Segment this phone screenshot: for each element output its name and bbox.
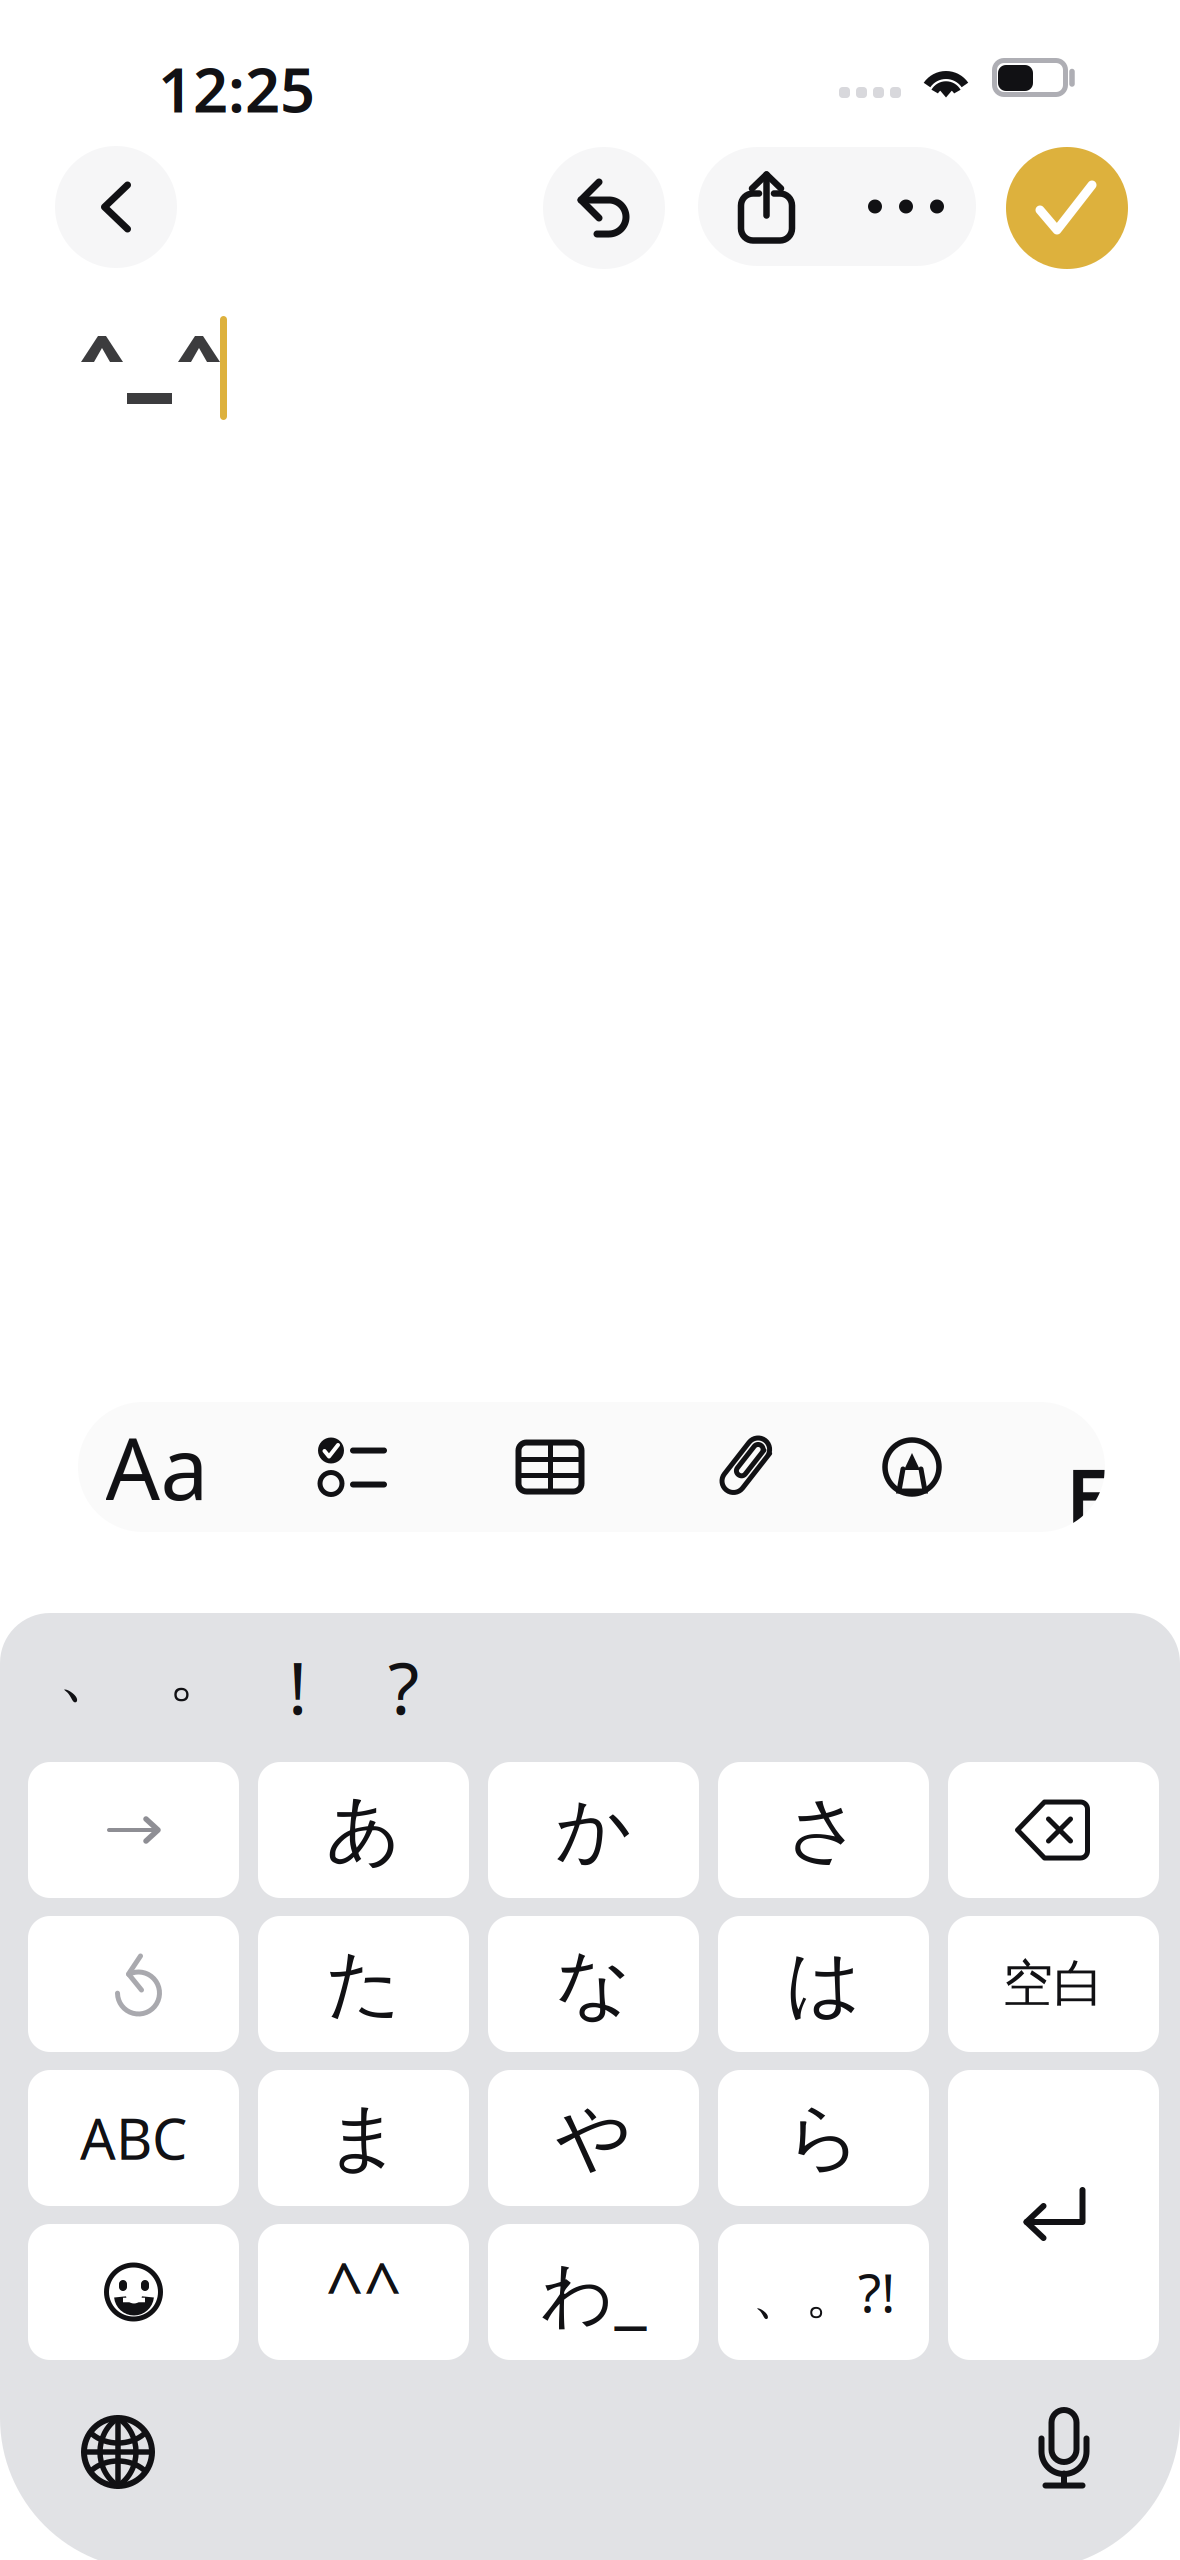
button[interactable]: わ_	[488, 2224, 699, 2360]
button[interactable]: Share	[698, 147, 836, 266]
button[interactable]: ら	[718, 2070, 929, 2206]
button[interactable]: Checklist	[281, 1402, 421, 1532]
staticText: 、。?!	[752, 2256, 895, 2328]
button[interactable]: さ	[718, 1762, 929, 1898]
staticText: 、	[58, 1634, 122, 1713]
staticText: !	[288, 1639, 307, 1735]
button[interactable]: Markup	[842, 1402, 982, 1532]
button[interactable]: や	[488, 2070, 699, 2206]
button[interactable]: か	[488, 1762, 699, 1898]
staticText: ら	[785, 2092, 861, 2184]
button[interactable]: あ	[258, 1762, 469, 1898]
staticText: か	[555, 1784, 631, 1876]
button[interactable]: ^^	[258, 2224, 469, 2360]
button[interactable]: ま	[258, 2070, 469, 2206]
button[interactable]: Done	[1006, 147, 1128, 269]
staticText: わ_	[540, 2244, 646, 2340]
button[interactable]	[28, 1762, 239, 1898]
button[interactable]: Table	[480, 1402, 620, 1532]
staticText: E	[1066, 1444, 1109, 1547]
staticText: た	[325, 1938, 401, 2030]
staticText: 。	[168, 1634, 232, 1713]
button[interactable]	[948, 2070, 1159, 2360]
staticText: Aa	[105, 1410, 208, 1524]
button[interactable]	[948, 1762, 1159, 1898]
staticText: ?	[388, 1639, 419, 1735]
button[interactable]: Undo	[543, 147, 665, 269]
staticText: は	[785, 1938, 861, 2030]
button[interactable]: 、。?!	[718, 2224, 929, 2360]
staticText: や	[555, 2092, 631, 2184]
staticText: あ	[325, 1784, 401, 1876]
button[interactable]: Back	[55, 146, 177, 268]
staticText: ま	[325, 2092, 401, 2184]
button[interactable]: は	[718, 1916, 929, 2052]
button[interactable]: た	[258, 1916, 469, 2052]
button[interactable]: Aa	[82, 1402, 232, 1532]
staticText: 空白	[1002, 1953, 1104, 2015]
staticText: 12:25	[158, 48, 315, 129]
button[interactable]	[28, 2224, 239, 2360]
button[interactable]: Attach file	[669, 1402, 809, 1532]
button[interactable]: な	[488, 1916, 699, 2052]
button[interactable]: Next keyboard	[63, 2397, 173, 2507]
staticText: ^^	[325, 2242, 401, 2330]
button[interactable]: Dictate	[1009, 2394, 1119, 2504]
staticText: さ	[785, 1784, 861, 1876]
button[interactable]: 空白	[948, 1916, 1159, 2052]
button[interactable]: More options	[836, 147, 976, 266]
button[interactable]: ABC	[28, 2070, 239, 2206]
staticText: ABC	[80, 2101, 187, 2175]
button[interactable]	[28, 1916, 239, 2052]
staticText: な	[555, 1938, 631, 2030]
